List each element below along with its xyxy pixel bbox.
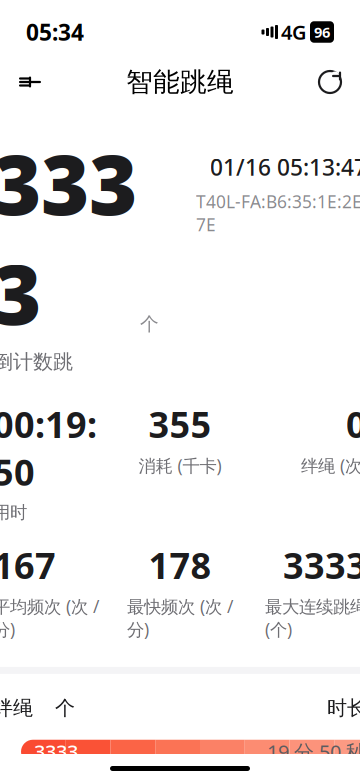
staticText: 绊绳 (次)	[301, 454, 360, 477]
staticText: 167	[0, 541, 56, 589]
staticText: 个	[55, 696, 75, 720]
staticText: 消耗 (千卡)	[138, 454, 221, 477]
staticText: 平均频次 (次 / 分)	[0, 595, 99, 641]
staticText: 3333	[0, 128, 137, 348]
staticText: 00:19:50	[0, 400, 97, 496]
staticText: 3333	[283, 541, 360, 589]
staticText: 最大连续跳绳 (个)	[265, 595, 360, 641]
staticText: 4G	[281, 19, 307, 45]
staticText: 355	[148, 400, 211, 448]
staticText: 0	[346, 400, 360, 448]
staticText: 178	[148, 541, 211, 589]
staticText: 绊绳	[0, 696, 33, 720]
staticText: 05:34	[26, 17, 84, 47]
button[interactable]: Back	[8, 60, 52, 104]
staticText: 时长	[327, 696, 360, 720]
staticText: 智能跳绳	[126, 66, 234, 98]
staticText: 最快频次 (次 / 分)	[127, 595, 233, 641]
staticText: 01/16 05:13:47	[210, 152, 360, 182]
staticText: 用时	[0, 502, 27, 523]
staticText: 96	[314, 22, 330, 42]
staticText: T40L-FA:B6:35:1E:2E:7E	[196, 190, 360, 236]
staticText: 个	[140, 313, 159, 335]
button[interactable]: Refresh	[308, 60, 352, 104]
staticText: 倒计数跳	[0, 350, 73, 374]
staticText: 19 分 50 秒	[267, 738, 360, 765]
staticText: 3333	[34, 738, 78, 765]
